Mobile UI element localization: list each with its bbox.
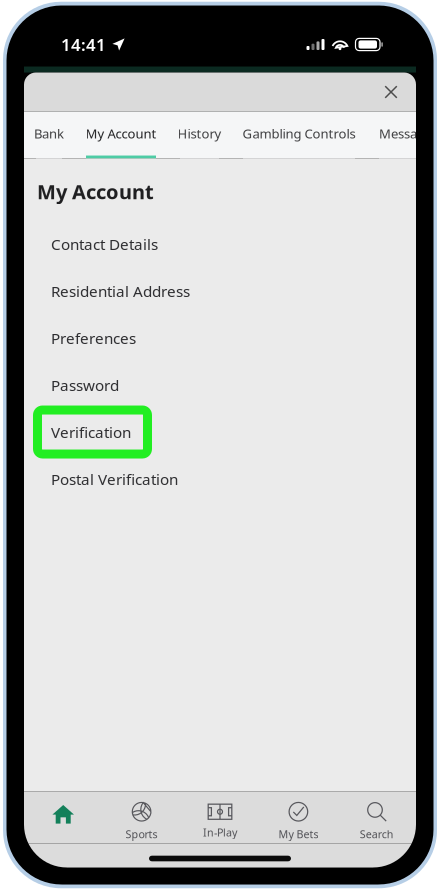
staticText: 14:41 xyxy=(61,33,106,56)
staticText: Bank xyxy=(34,125,64,142)
button[interactable]: Residential Address xyxy=(24,267,416,314)
staticText: Contact Details xyxy=(51,234,158,254)
button[interactable]: Postal Verification xyxy=(24,455,416,502)
staticText: Password xyxy=(51,375,119,395)
staticText: Search xyxy=(360,827,394,841)
button[interactable]: Sports xyxy=(102,791,181,843)
staticText: My Account xyxy=(37,178,154,205)
button[interactable]: In-Play xyxy=(181,791,259,843)
staticText: Gambling Controls xyxy=(242,125,355,142)
staticText: Sports xyxy=(126,827,158,841)
button[interactable]: Verification xyxy=(24,408,416,455)
staticText: My Bets xyxy=(278,827,318,841)
button[interactable]: Bank xyxy=(24,111,74,158)
staticText: Residential Address xyxy=(51,281,190,301)
button[interactable]: Preferences xyxy=(24,314,416,361)
button[interactable]: Search xyxy=(338,791,416,843)
button[interactable]: Gambling Controls xyxy=(231,111,367,158)
button[interactable]: History xyxy=(168,111,231,158)
staticText: Verification xyxy=(51,422,131,442)
button[interactable]: Password xyxy=(24,361,416,408)
button[interactable]: Contact Details xyxy=(24,220,416,267)
button[interactable]: My Bets xyxy=(259,791,338,843)
staticText: Preferences xyxy=(51,328,136,348)
button[interactable]: My Account xyxy=(74,111,168,158)
button[interactable]: Close xyxy=(373,74,409,110)
staticText: Messages xyxy=(379,125,438,142)
staticText: In-Play xyxy=(203,825,237,839)
button[interactable]: Messages xyxy=(367,111,440,158)
staticText: Postal Verification xyxy=(51,469,178,489)
staticText: My Account xyxy=(85,125,156,142)
button[interactable]: Home xyxy=(24,791,102,843)
staticText: History xyxy=(177,125,221,142)
